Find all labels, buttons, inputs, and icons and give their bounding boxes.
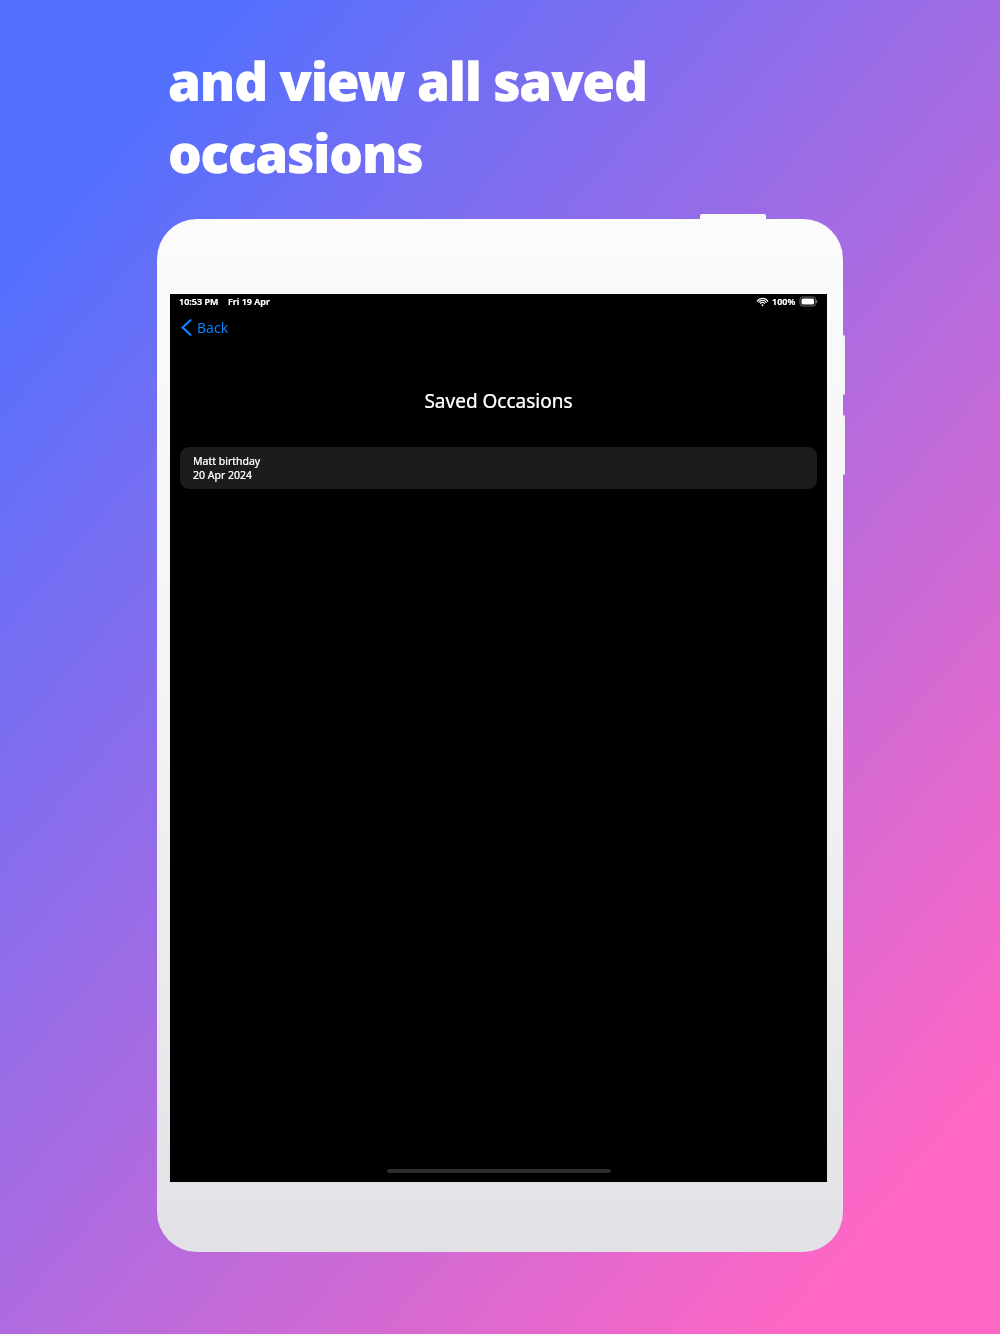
staticText: Saved Occasions <box>170 388 827 414</box>
staticText: 20 Apr 2024 <box>193 468 252 482</box>
staticText: Matt birthday <box>193 454 261 468</box>
staticText: occasions <box>168 116 423 188</box>
button[interactable]: Matt birthday <box>180 447 817 489</box>
staticText: Back <box>197 318 229 337</box>
staticText: Fri 19 Apr <box>228 295 270 307</box>
staticText: 100% <box>772 295 796 307</box>
button[interactable]: Back <box>176 314 234 341</box>
staticText: 10:53 PM <box>179 295 219 307</box>
staticText: and view all saved <box>168 44 647 116</box>
